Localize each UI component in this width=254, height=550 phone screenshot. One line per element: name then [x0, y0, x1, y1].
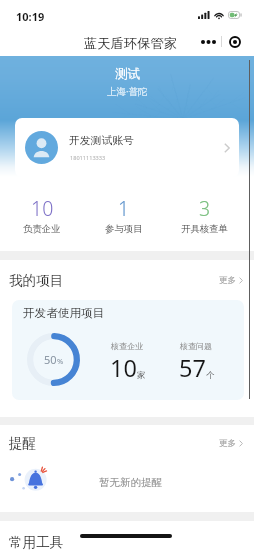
staticText: 更多	[219, 438, 236, 449]
staticText: 更多	[219, 275, 236, 286]
staticText: 负责企业	[23, 223, 61, 235]
staticText: 核查问题	[180, 341, 212, 351]
button[interactable]: 10	[1, 192, 83, 238]
staticText: 10	[31, 195, 54, 222]
staticText: %	[57, 356, 64, 366]
staticText: 暂无新的提醒	[99, 476, 162, 489]
staticText: 个	[206, 370, 215, 381]
button[interactable]: Close mini program	[222, 32, 248, 51]
staticText: 3	[199, 195, 211, 222]
staticText: 上海·普陀	[107, 85, 148, 98]
button[interactable]: More reminders	[219, 438, 243, 449]
staticText: 我的项目	[9, 272, 64, 289]
staticText: 开发测试账号	[69, 134, 134, 148]
staticText: 10	[110, 352, 137, 384]
staticText: 测试	[115, 66, 140, 82]
button[interactable]: More options	[196, 32, 221, 51]
staticText: 10:19	[16, 9, 45, 24]
staticText: 常用工具	[9, 534, 64, 550]
staticText: 家	[137, 370, 146, 381]
button[interactable]: 开发测试账号	[15, 118, 239, 177]
staticText: 提醒	[9, 435, 37, 452]
staticText: 50	[44, 352, 57, 367]
staticText: 57	[179, 352, 206, 384]
staticText: 参与项目	[105, 223, 143, 235]
button[interactable]: 开发者使用项目	[12, 300, 244, 400]
staticText: 开发者使用项目	[23, 306, 105, 321]
staticText: 核查企业	[111, 341, 143, 351]
button[interactable]: More my-projects	[219, 275, 243, 286]
staticText: 蓝天盾环保管家	[84, 35, 178, 52]
staticText: 18011113333	[70, 154, 106, 162]
button[interactable]: 暂无新的提醒	[0, 452, 254, 510]
staticText: 1	[118, 195, 130, 222]
staticText: 开具核查单	[181, 223, 228, 235]
button[interactable]: 3	[164, 192, 245, 238]
button[interactable]: 1	[83, 192, 164, 238]
